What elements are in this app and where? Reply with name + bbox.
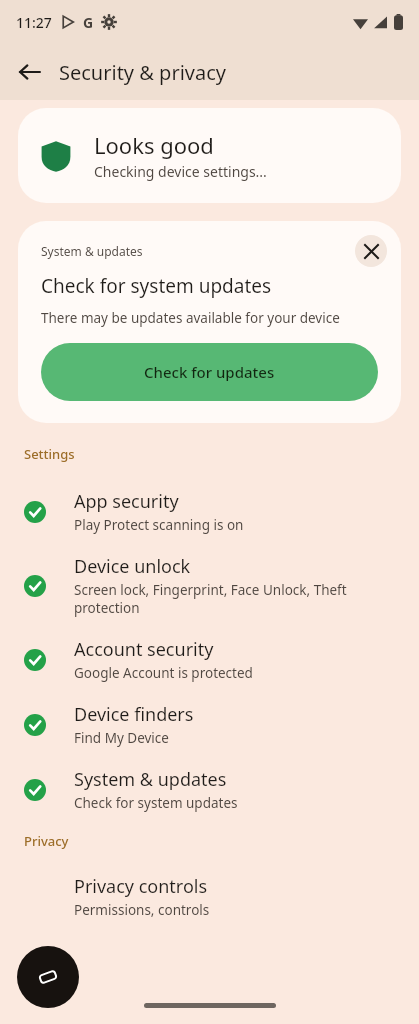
button[interactable]: Privacy controls bbox=[0, 864, 419, 929]
staticText: Account security bbox=[74, 637, 214, 662]
staticText: System & updates bbox=[41, 243, 143, 259]
button[interactable]: Device finders bbox=[0, 692, 419, 757]
button[interactable]: Rotate screen bbox=[17, 946, 79, 1008]
staticText: 11:27 bbox=[16, 13, 52, 32]
staticText: Looks good bbox=[94, 130, 214, 160]
button[interactable]: Back bbox=[10, 52, 50, 92]
staticText: There may be updates available for your … bbox=[41, 309, 340, 327]
button[interactable]: System & updates bbox=[0, 757, 419, 822]
staticText: G bbox=[83, 13, 94, 32]
button[interactable]: App security bbox=[0, 479, 419, 544]
staticText: Play Protect scanning is on bbox=[74, 516, 244, 534]
staticText: Device finders bbox=[74, 702, 194, 727]
staticText: Permissions, controls bbox=[74, 901, 210, 919]
button[interactable]: Looks good bbox=[18, 108, 401, 203]
button[interactable]: Check for updates bbox=[41, 343, 378, 401]
staticText: Security & privacy bbox=[59, 59, 226, 86]
staticText: System & updates bbox=[74, 767, 227, 792]
staticText: Privacy controls bbox=[74, 874, 208, 899]
staticText: Check for system updates bbox=[41, 273, 272, 299]
staticText: Screen lock, Fingerprint, Face Unlock, T… bbox=[74, 581, 395, 617]
staticText: App security bbox=[74, 489, 179, 514]
staticText: Device unlock bbox=[74, 554, 191, 579]
staticText: Check for system updates bbox=[74, 794, 238, 812]
button[interactable]: Dismiss bbox=[355, 235, 387, 267]
button[interactable]: Device unlock bbox=[0, 544, 419, 627]
staticText: Google Account is protected bbox=[74, 664, 253, 682]
staticText: Privacy bbox=[24, 832, 69, 850]
staticText: Settings bbox=[24, 445, 75, 463]
staticText: Check for updates bbox=[144, 362, 275, 382]
button[interactable]: Account security bbox=[0, 627, 419, 692]
staticText: Find My Device bbox=[74, 729, 169, 747]
staticText: Checking device settings... bbox=[94, 162, 267, 181]
